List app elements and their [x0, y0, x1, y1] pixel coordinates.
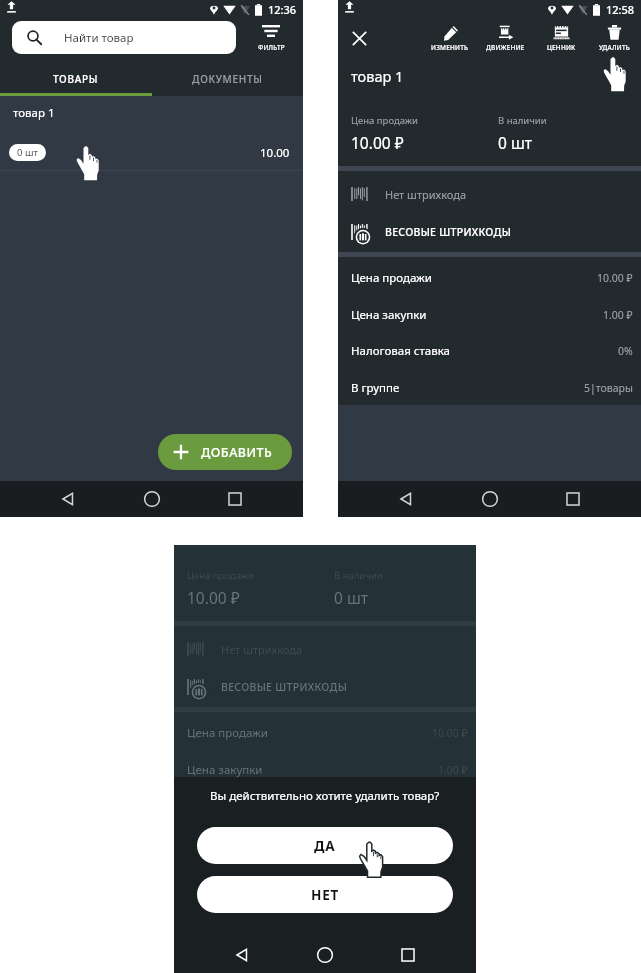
button[interactable]: Недавние [556, 481, 590, 517]
staticText: В наличии [334, 569, 383, 582]
staticText: ИЗМЕНИТЬ [431, 43, 469, 52]
staticText: 0 шт [498, 132, 532, 153]
staticText: Налоговая ставка [351, 343, 450, 359]
button[interactable]: Домой [308, 937, 342, 973]
staticText: Нет штрихкода [221, 642, 303, 657]
staticText: 0 шт [334, 587, 368, 608]
button[interactable]: НЕТ [197, 876, 453, 913]
button[interactable]: В группе [174, 825, 476, 861]
staticText: 10.00 ₽ [187, 587, 240, 608]
staticText: Нет штрихкода [385, 187, 467, 202]
staticText: Вы действительно хотите удалить товар? [210, 788, 440, 804]
button[interactable]: ВЕСОВЫЕ ШТРИХКОДЫ [174, 668, 476, 706]
button[interactable]: Домой [135, 481, 169, 517]
button[interactable]: ДОБАВИТЬ [158, 434, 292, 470]
staticText: ФИЛЬТР [258, 43, 285, 52]
button[interactable]: ДВИЖЕНИЕ [477, 24, 533, 52]
staticText: В группе [351, 380, 400, 396]
button[interactable]: Назад [225, 937, 259, 973]
button[interactable]: Налоговая ставка [338, 333, 641, 369]
staticText: 1.00 ₽ [603, 308, 633, 322]
button[interactable]: Недавние [218, 481, 252, 517]
button[interactable]: Фильтр [246, 20, 296, 58]
staticText: 10.00 ₽ [597, 271, 633, 285]
button[interactable]: Недавние [391, 937, 425, 973]
staticText: ТОВАРЫ [53, 72, 99, 86]
staticText: ВЕСОВЫЕ ШТРИХКОДЫ [385, 225, 512, 239]
button[interactable]: Цена закупки [338, 297, 641, 333]
button[interactable]: Назад [51, 481, 85, 517]
staticText: ДОКУМЕНТЫ [192, 72, 263, 86]
staticText: Цена закупки [187, 762, 263, 778]
staticText: Цена продажи [187, 725, 268, 741]
staticText: 10.00 ₽ [432, 726, 468, 740]
staticText: товар 1 [351, 66, 404, 86]
staticText: НЕТ [311, 886, 340, 904]
button[interactable]: ТОВАРЫ [0, 62, 151, 96]
button[interactable]: ИЗМЕНИТЬ [422, 24, 478, 52]
staticText: 10.00 ₽ [351, 132, 404, 153]
button[interactable]: ВЕСОВЫЕ ШТРИХКОДЫ [338, 213, 641, 251]
staticText: 12:58 [606, 2, 635, 17]
staticText: ДОБАВИТЬ [201, 444, 273, 461]
staticText: ДА [314, 837, 336, 855]
staticText: 12:36 [268, 2, 297, 17]
staticText: В группе [187, 835, 236, 851]
staticText: Найти товар [64, 30, 134, 46]
button[interactable]: Назад [389, 481, 423, 517]
staticText: ВЕСОВЫЕ ШТРИХКОДЫ [221, 680, 348, 694]
staticText: 0% [618, 344, 633, 358]
staticText: УДАЛИТЬ [599, 43, 630, 52]
button[interactable]: Цена продажи [174, 715, 476, 751]
button[interactable]: Цена продажи [338, 260, 641, 296]
button[interactable]: УДАЛИТЬ [586, 24, 641, 52]
button[interactable]: Цена закупки [174, 752, 476, 788]
staticText: Налоговая ставка [187, 798, 286, 814]
button[interactable]: ЦЕННИК [533, 24, 589, 52]
staticText: 10.00 [260, 145, 290, 161]
staticText: Цена продажи [351, 270, 432, 286]
button[interactable]: Нет штрихкода [338, 175, 641, 213]
button[interactable]: Закрыть [347, 26, 371, 50]
button[interactable]: Налоговая ставка [174, 788, 476, 824]
staticText: товар 1 [13, 105, 55, 121]
staticText: В наличии [498, 114, 547, 127]
staticText: 5|товары [419, 836, 468, 850]
staticText: Цена продажи [187, 569, 254, 582]
staticText: ДВИЖЕНИЕ [486, 43, 525, 52]
button[interactable]: ДОКУМЕНТЫ [151, 62, 303, 96]
button[interactable]: В группе [338, 370, 641, 406]
button[interactable]: Нет штрихкода [174, 630, 476, 668]
staticText: 5|товары [584, 381, 633, 395]
button[interactable]: товар 1 [0, 96, 303, 170]
button[interactable]: Найти товар [12, 21, 236, 54]
staticText: 0 шт [17, 146, 38, 159]
staticText: 1.00 ₽ [438, 763, 468, 777]
button[interactable]: ДА [197, 827, 453, 864]
staticText: Цена продажи [351, 114, 418, 127]
staticText: ЦЕННИК [547, 43, 576, 52]
button[interactable]: Домой [473, 481, 507, 517]
staticText: Цена закупки [351, 307, 427, 323]
